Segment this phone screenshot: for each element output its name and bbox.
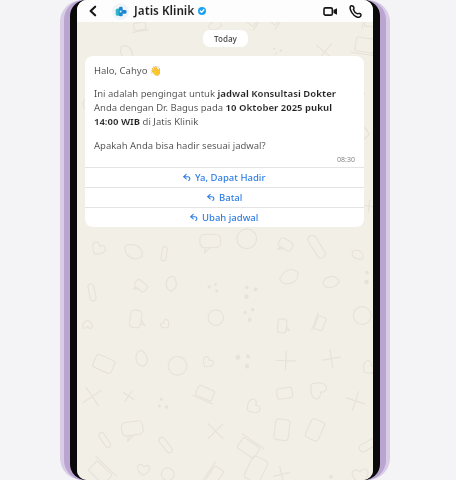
staticText: Apakah Anda bisa hadir sesuai jadwal?	[94, 139, 266, 152]
button[interactable]: Video call	[319, 0, 341, 22]
staticText: Today	[214, 33, 237, 44]
button[interactable]: Call	[344, 0, 366, 22]
staticText: Ini adalah pengingat untuk jadwal Konsul…	[94, 87, 355, 128]
staticText: Jatis Klinik	[134, 3, 195, 19]
button[interactable]: Ya, Dapat Hadir	[85, 167, 364, 187]
staticText: Batal	[219, 191, 243, 204]
staticText: Halo, Cahyo 👋	[94, 64, 162, 77]
button[interactable]: Jatis Klinik	[112, 0, 319, 22]
staticText: 08:30	[337, 155, 355, 165]
staticText: Ubah jadwal	[202, 211, 259, 224]
button[interactable]: Ubah jadwal	[85, 207, 364, 227]
button[interactable]: Batal	[85, 187, 364, 207]
staticText: Ya, Dapat Hadir	[195, 171, 266, 184]
button[interactable]: Back	[83, 1, 103, 21]
